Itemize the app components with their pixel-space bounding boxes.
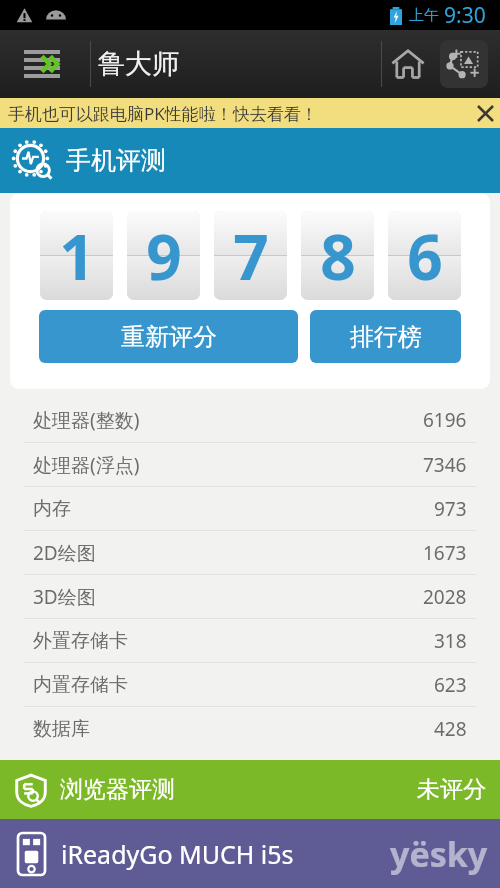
staticText: 排行榜 (350, 322, 422, 352)
staticText: 处理器(整数) (33, 407, 140, 433)
staticText: 鲁大师 (98, 47, 179, 81)
staticText: 9 (146, 214, 182, 298)
staticText: 手机也可以跟电脑PK性能啦！快去看看！ (8, 102, 318, 125)
staticText: 重新评分 (121, 322, 217, 352)
button[interactable]: 排行榜 (310, 310, 461, 363)
staticText: 1673 (423, 540, 467, 566)
staticText: 处理器(浮点) (33, 452, 140, 478)
staticText: 7 (233, 214, 269, 298)
staticText: 6 (407, 214, 443, 298)
staticText: 318 (434, 628, 467, 654)
button[interactable]: Menu (8, 30, 76, 98)
staticText: 3D绘图 (33, 584, 96, 610)
staticText: 内存 (33, 497, 71, 521)
staticText: 上午 (409, 6, 439, 25)
button[interactable]: 处理器(浮点) (0, 443, 500, 486)
staticText: 8 (320, 214, 356, 298)
staticText: 数据库 (33, 717, 90, 741)
staticText: 428 (434, 716, 467, 742)
staticText: 手机评测 (66, 145, 166, 176)
button[interactable]: 2D绘图 (0, 531, 500, 574)
staticText: 9:30 (444, 1, 486, 30)
button[interactable]: 3D绘图 (0, 575, 500, 618)
button[interactable]: 外置存储卡 (0, 619, 500, 662)
staticText: 6196 (423, 407, 467, 433)
staticText: 623 (434, 672, 467, 698)
staticText: 浏览器评测 (60, 775, 175, 804)
staticText: 7346 (423, 452, 467, 478)
button[interactable]: iReadyGo MUCH i5s (18, 819, 500, 888)
button[interactable]: 内置存储卡 (0, 663, 500, 706)
staticText: 1 (59, 214, 95, 298)
staticText: 2028 (423, 584, 467, 610)
button[interactable]: Close (470, 98, 500, 128)
button[interactable]: 数据库 (0, 707, 500, 750)
staticText: 未评分 (417, 775, 486, 804)
button[interactable]: 内存 (0, 487, 500, 530)
staticText: 2D绘图 (33, 540, 96, 566)
button[interactable]: 手机也可以跟电脑PK性能啦！快去看看！ (0, 98, 500, 128)
staticText: 内置存储卡 (33, 673, 128, 697)
staticText: iReadyGo MUCH i5s (61, 837, 294, 871)
button[interactable]: 重新评分 (39, 310, 298, 363)
staticText: yësky (390, 831, 488, 877)
button[interactable]: 处理器(整数) (0, 398, 500, 442)
button[interactable]: Home (378, 34, 438, 94)
staticText: 973 (434, 496, 467, 522)
button[interactable]: 浏览器评测 (14, 760, 486, 819)
staticText: 外置存储卡 (33, 629, 128, 653)
button[interactable]: 手机评测 (12, 128, 500, 193)
button[interactable]: Share screenshot (434, 34, 494, 94)
